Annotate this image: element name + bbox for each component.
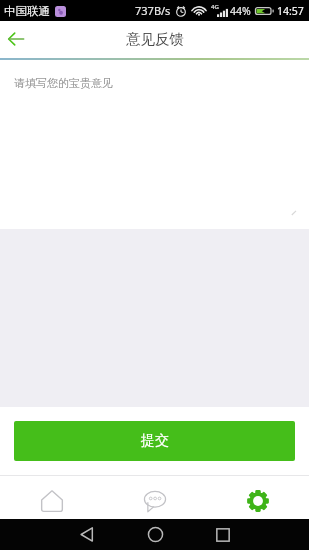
- staticText: 意见反馈: [126, 30, 184, 48]
- staticText: 请填写您的宝贵意见: [14, 76, 113, 90]
- button[interactable]: Messages: [103, 476, 206, 519]
- button[interactable]: Back: [52, 519, 121, 550]
- button[interactable]: Settings: [206, 476, 309, 519]
- button[interactable]: 提交: [14, 421, 295, 461]
- staticText: 中国联通: [4, 4, 50, 18]
- staticText: 44%: [230, 4, 251, 18]
- button[interactable]: Back: [0, 22, 32, 57]
- button[interactable]: Home: [0, 476, 103, 519]
- staticText: 737B/s: [135, 3, 171, 18]
- button[interactable]: Recents: [189, 519, 257, 550]
- button[interactable]: 请填写您的宝贵意见: [0, 60, 309, 229]
- staticText: 4G: [211, 3, 219, 11]
- button[interactable]: Home: [121, 519, 189, 550]
- staticText: 提交: [141, 432, 169, 450]
- staticText: 14:57: [277, 4, 304, 18]
